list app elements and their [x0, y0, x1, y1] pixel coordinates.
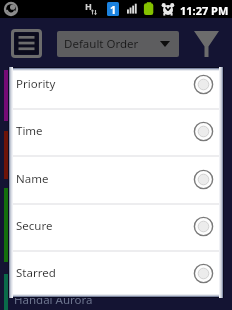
button[interactable]: Default Order	[57, 31, 179, 57]
staticText: Priority	[16, 76, 56, 92]
staticText: Default Order	[64, 36, 139, 52]
button[interactable]: Filter	[192, 29, 221, 58]
staticText: H	[85, 0, 92, 12]
button[interactable]: Secure	[9, 203, 224, 250]
button[interactable]: Name	[9, 156, 224, 203]
staticText: 11:27 PM	[180, 3, 229, 18]
staticText: Time	[16, 123, 43, 139]
staticText: 1	[110, 2, 117, 16]
staticText: Handal Aurora	[14, 292, 93, 308]
button[interactable]: Time	[9, 108, 224, 155]
staticText: Secure	[16, 218, 53, 234]
button[interactable]: Priority	[9, 68, 224, 108]
button[interactable]: Menu	[11, 29, 42, 58]
button[interactable]: Starred	[9, 250, 224, 297]
staticText: Starred	[16, 265, 56, 281]
staticText: Name	[16, 171, 49, 187]
